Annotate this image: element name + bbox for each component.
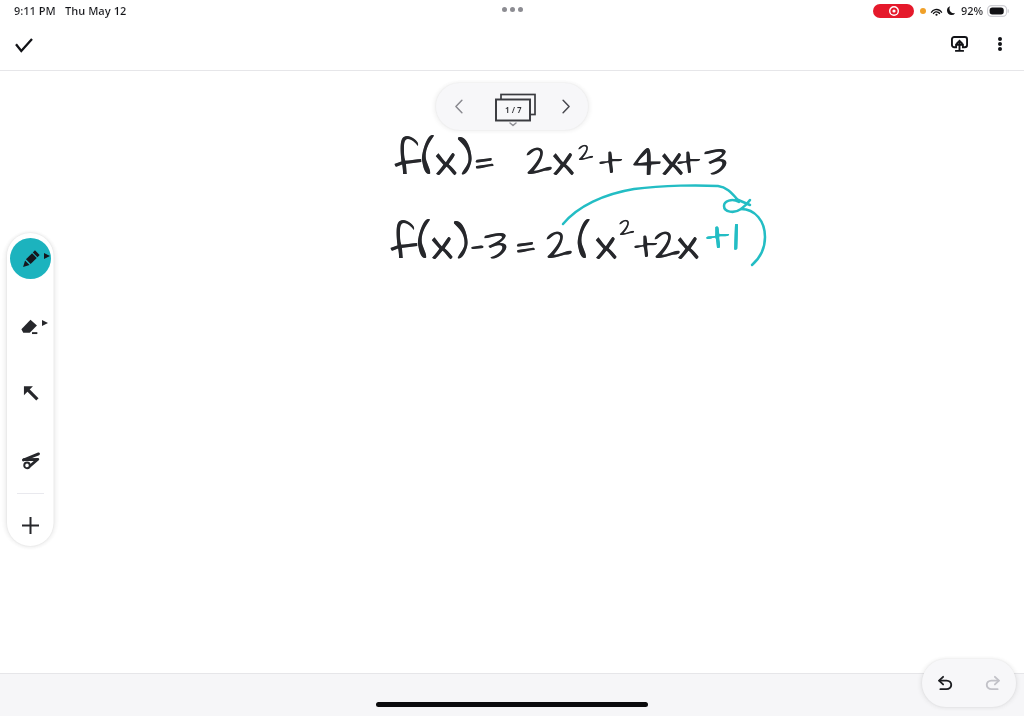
staticText: 92% [961,3,984,18]
staticText: 1 / 7 [505,104,522,115]
staticText: 9:11 PM [14,3,56,18]
button[interactable]: Select [10,372,51,413]
button[interactable]: More options [978,22,1022,66]
button[interactable]: Redo [969,659,1016,707]
button[interactable]: Undo [922,659,969,707]
button[interactable]: Eraser [10,305,51,346]
button[interactable]: Present [937,22,981,66]
button[interactable]: Next page [542,83,588,130]
button[interactable]: Lasso [10,439,51,480]
button[interactable]: Previous page [436,83,482,130]
staticText: Thu May 12 [65,3,127,18]
button[interactable]: Pen [10,238,51,279]
button[interactable]: Page 1 of 7 [482,83,542,130]
button[interactable]: Add tool [10,505,51,546]
button[interactable]: Done [2,23,46,67]
